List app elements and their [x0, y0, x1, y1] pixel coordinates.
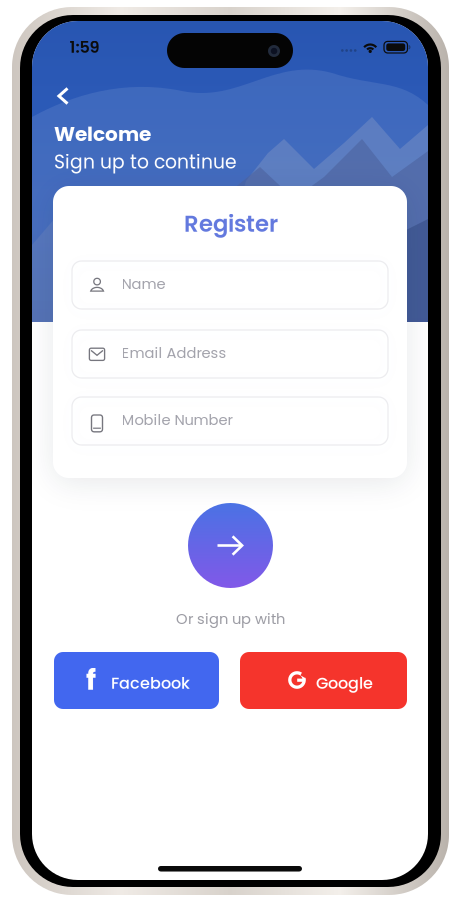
staticText: 1:59 [69, 36, 99, 58]
staticText: Or sign up with [176, 608, 285, 629]
staticText: Welcome [54, 120, 151, 148]
button[interactable]: Back [41, 74, 85, 118]
button[interactable]: Email Address [72, 330, 388, 378]
staticText: Facebook [111, 672, 190, 694]
button[interactable]: Mobile Number [72, 397, 388, 445]
staticText: Email Address [121, 342, 226, 363]
button[interactable]: Continue [188, 503, 273, 588]
staticText: Mobile Number [121, 409, 232, 430]
button[interactable]: Google [240, 652, 407, 709]
staticText: Name [121, 273, 165, 294]
staticText: Register [184, 208, 278, 240]
button[interactable]: Name [72, 261, 388, 309]
staticText: Sign up to continue [54, 149, 237, 175]
button[interactable]: f [54, 652, 219, 709]
staticText: Google [316, 672, 373, 694]
staticText: f [86, 660, 96, 700]
